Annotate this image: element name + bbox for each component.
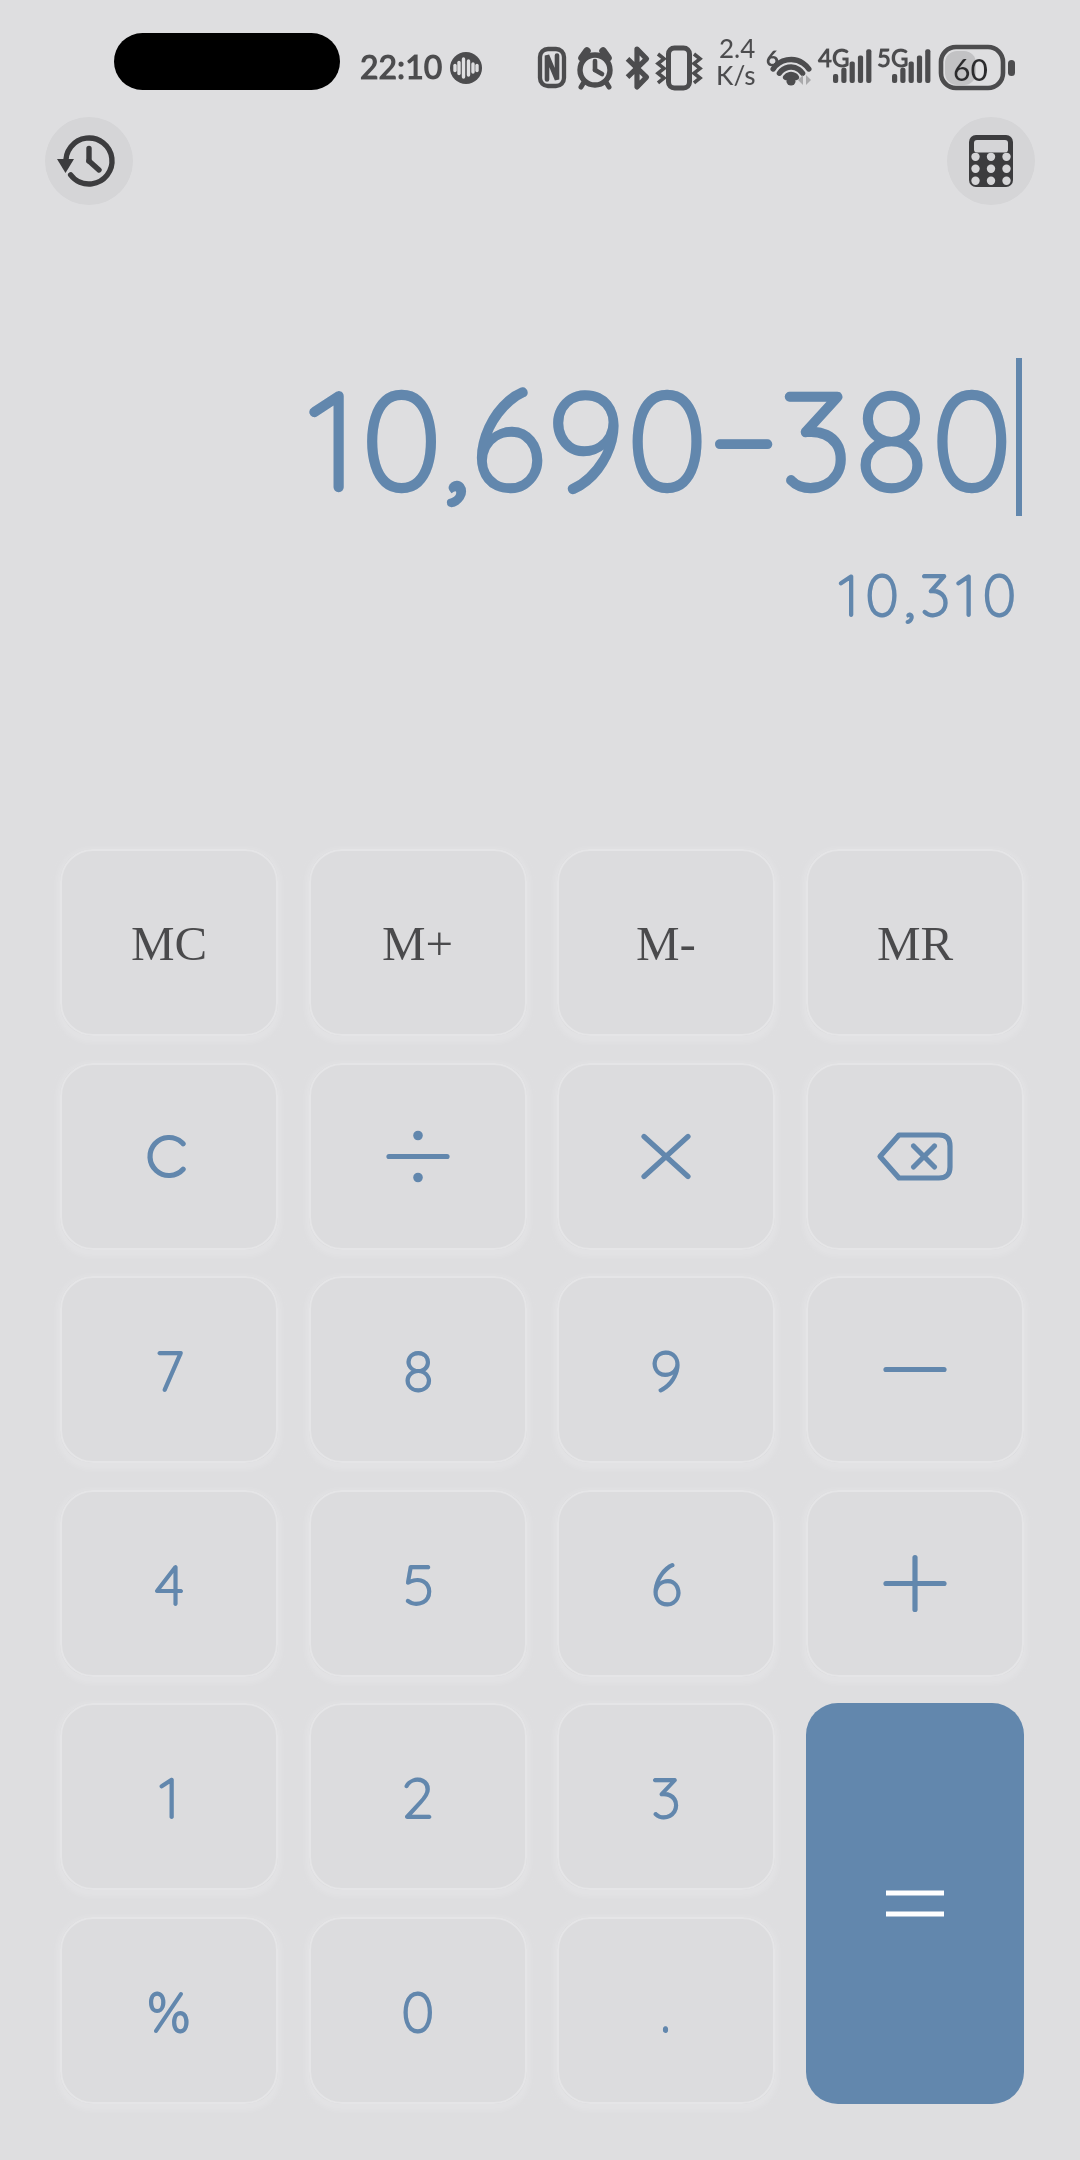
staticText: 6 (766, 44, 779, 70)
button[interactable]: 4 (60, 1490, 278, 1677)
button[interactable]: % (60, 1917, 278, 2104)
button[interactable]: 2 (309, 1703, 527, 1890)
button[interactable]: 6 (557, 1490, 775, 1677)
staticText: MR (877, 916, 954, 970)
staticText: 5 (403, 1548, 434, 1619)
button[interactable]: History (45, 117, 133, 205)
staticText: 3 (651, 1761, 681, 1832)
staticText: K/s (716, 59, 756, 90)
staticText: 4G (818, 43, 850, 72)
staticText: 7 (155, 1334, 184, 1405)
staticText: 10,310 (0, 558, 1022, 631)
staticText: 60 (953, 51, 988, 87)
button[interactable]: Divide (309, 1063, 527, 1250)
button[interactable]: Scientific calculator (947, 117, 1035, 205)
staticText: % (147, 1975, 191, 2046)
staticText: 1 (159, 1761, 180, 1832)
button[interactable]: 8 (309, 1276, 527, 1463)
button[interactable]: 1 (60, 1703, 278, 1890)
staticText: . (661, 1975, 671, 2046)
staticText: M- (636, 916, 696, 970)
button[interactable]: M- (557, 849, 775, 1036)
button[interactable]: 3 (557, 1703, 775, 1890)
staticText: 2.4 (719, 32, 756, 63)
button[interactable]: Equals (806, 1703, 1024, 2104)
button[interactable]: 9 (557, 1276, 775, 1463)
staticText: 5G (877, 43, 909, 72)
button[interactable]: 7 (60, 1276, 278, 1463)
button[interactable]: M+ (309, 849, 527, 1036)
staticText: MC (131, 916, 208, 970)
staticText: 9 (650, 1334, 682, 1405)
button[interactable]: 5 (309, 1490, 527, 1677)
staticText: 8 (403, 1334, 434, 1405)
staticText: 4 (155, 1548, 184, 1619)
button[interactable]: Plus (806, 1490, 1024, 1677)
staticText: 22:10 (360, 47, 443, 85)
button[interactable]: Multiply (557, 1063, 775, 1250)
staticText: 6 (651, 1548, 682, 1619)
button[interactable]: MR (806, 849, 1024, 1036)
staticText: 0 (401, 1975, 435, 2046)
staticText: 2 (402, 1761, 434, 1832)
staticText: M+ (382, 916, 454, 970)
button[interactable]: Minus (806, 1276, 1024, 1463)
button[interactable]: . (557, 1917, 775, 2104)
button[interactable]: MC (60, 849, 278, 1036)
button[interactable]: 0 (309, 1917, 527, 2104)
button[interactable]: Clear (60, 1063, 278, 1250)
button[interactable]: Backspace (806, 1063, 1024, 1250)
staticText: 10,690−380 (308, 352, 1016, 525)
